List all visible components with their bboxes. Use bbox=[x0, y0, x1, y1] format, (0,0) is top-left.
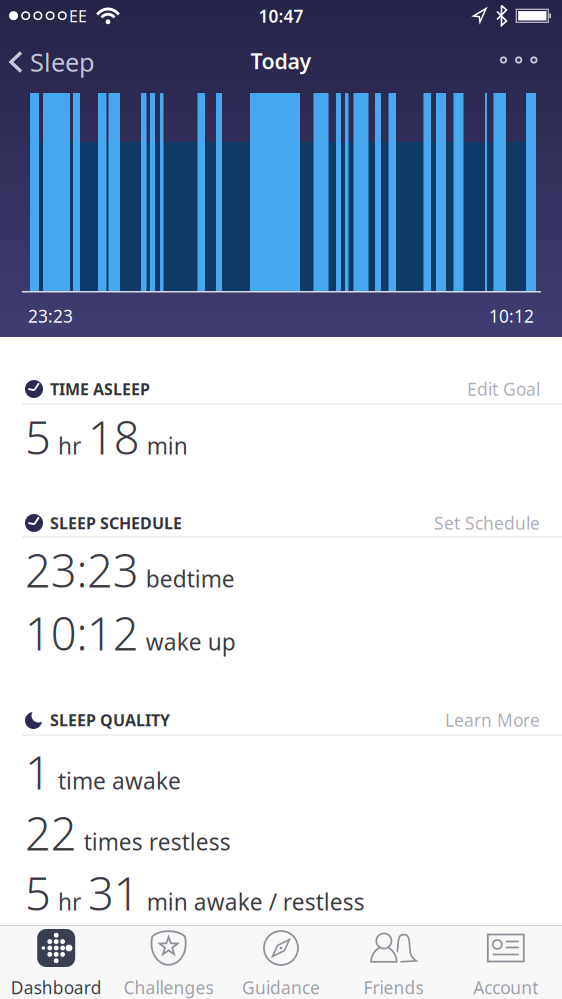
staticText: 18 bbox=[88, 407, 140, 467]
button[interactable]: Back to Sleep bbox=[9, 45, 95, 79]
staticText: 5 bbox=[25, 863, 51, 923]
button[interactable]: Dashboard bbox=[0, 925, 112, 999]
staticText: SLEEP QUALITY bbox=[50, 709, 170, 731]
staticText: bedtime bbox=[146, 564, 235, 594]
staticText: min awake / restless bbox=[147, 887, 365, 917]
staticText: hr bbox=[58, 887, 81, 917]
staticText: Guidance bbox=[242, 976, 320, 999]
button[interactable]: Friends bbox=[337, 925, 450, 999]
button[interactable]: Guidance bbox=[225, 925, 337, 999]
button[interactable]: Challenges bbox=[112, 925, 225, 999]
staticText: Challenges bbox=[124, 976, 214, 999]
staticText: Learn More bbox=[445, 708, 540, 731]
staticText: 23:23 bbox=[25, 540, 139, 600]
staticText: min bbox=[147, 431, 188, 461]
staticText: times restless bbox=[84, 827, 231, 857]
button[interactable]: Edit Goal bbox=[467, 377, 540, 400]
staticText: Account bbox=[473, 976, 538, 999]
staticText: TIME ASLEEP bbox=[50, 378, 150, 400]
staticText: 10:12 bbox=[25, 603, 139, 663]
staticText: Today bbox=[250, 47, 311, 75]
staticText: SLEEP SCHEDULE bbox=[50, 512, 182, 534]
staticText: time awake bbox=[58, 766, 181, 796]
staticText: 22 bbox=[25, 803, 77, 863]
staticText: 1 bbox=[25, 742, 51, 802]
button[interactable]: Learn More bbox=[445, 708, 540, 731]
button[interactable]: More options bbox=[492, 48, 546, 72]
button[interactable]: Set Schedule bbox=[434, 511, 540, 534]
staticText: EE bbox=[69, 5, 87, 27]
staticText: hr bbox=[58, 431, 81, 461]
staticText: 10:47 bbox=[258, 4, 303, 27]
staticText: Set Schedule bbox=[434, 511, 540, 534]
staticText: Dashboard bbox=[11, 976, 102, 999]
staticText: wake up bbox=[146, 627, 236, 657]
staticText: 5 bbox=[25, 407, 51, 467]
staticText: 23:23 bbox=[28, 304, 73, 327]
staticText: Edit Goal bbox=[467, 377, 540, 400]
staticText: Sleep bbox=[30, 45, 95, 79]
staticText: 10:12 bbox=[489, 304, 534, 327]
staticText: 31 bbox=[88, 863, 140, 923]
button[interactable]: Account bbox=[450, 925, 562, 999]
staticText: Friends bbox=[363, 976, 423, 999]
